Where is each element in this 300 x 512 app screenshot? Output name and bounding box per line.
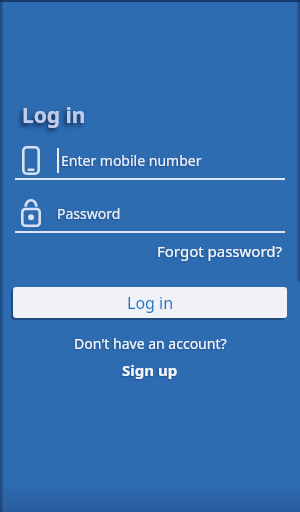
button[interactable]: Password (21, 198, 284, 228)
staticText: Password (57, 204, 121, 223)
staticText: Don't have an account? (74, 334, 227, 353)
button[interactable]: Enter mobile number (22, 145, 284, 175)
button[interactable]: Log in (13, 287, 287, 318)
staticText: Log in (22, 101, 86, 130)
staticText: Log in (127, 292, 174, 314)
staticText: Enter mobile number (61, 151, 202, 170)
button[interactable]: Forgot password? (157, 241, 283, 261)
button[interactable]: Sign up (122, 360, 178, 380)
